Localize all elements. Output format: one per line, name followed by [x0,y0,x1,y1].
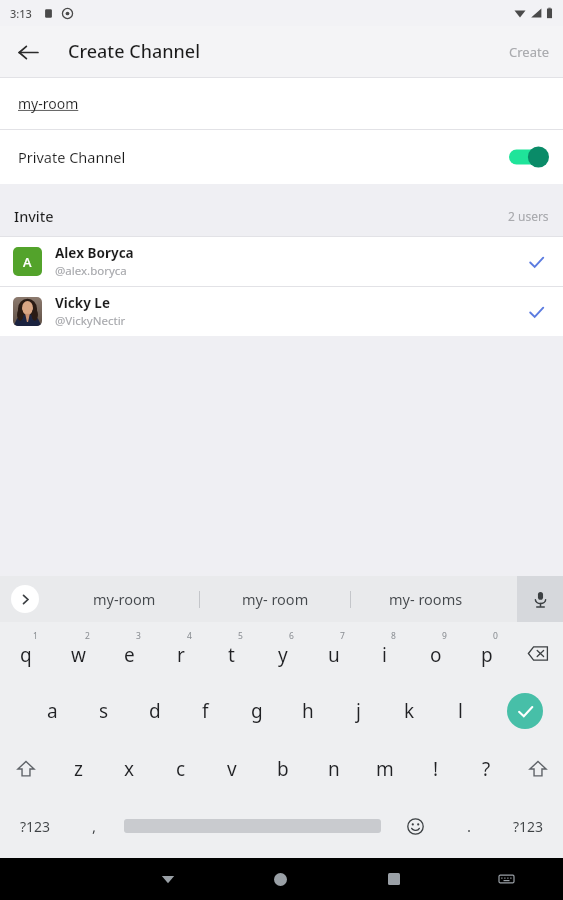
button[interactable]: ? [461,740,512,798]
button[interactable]: f [180,682,231,740]
button[interactable]: my-room [0,78,563,129]
staticText: l [458,698,463,724]
staticText: Private Channel [18,147,126,167]
button[interactable]: 6 [257,624,308,682]
staticText: g [251,698,263,724]
staticText: 5 [238,630,243,642]
staticText: 9 [442,630,447,642]
button[interactable]: c [155,740,206,798]
staticText: Create Channel [68,39,200,64]
staticText: ? [482,756,491,782]
button[interactable]: 9 [410,624,461,682]
staticText: ?123 [513,817,544,836]
button[interactable]: , [70,798,118,854]
button[interactable]: 1 [0,624,52,682]
button[interactable]: Private Channel [0,130,563,184]
button[interactable]: Voice input [517,576,563,622]
staticText: r [177,642,185,668]
button[interactable]: m [359,740,410,798]
button[interactable]: 0 [461,624,512,682]
button[interactable]: d [129,682,180,740]
staticText: a [47,698,58,724]
button[interactable]: my- room [200,576,350,622]
button[interactable]: Hide keyboard [112,858,224,900]
button[interactable]: Switch keyboard [450,858,563,900]
staticText: A [23,253,32,271]
button[interactable]: Vicky Le [0,287,563,336]
button[interactable]: my- rooms [351,576,501,622]
staticText: s [99,698,109,724]
staticText: @alex.boryca [55,263,127,279]
staticText: 3 [136,630,141,642]
button[interactable]: Space [118,798,386,854]
staticText: i [382,642,387,668]
staticText: 3:13 [10,6,32,21]
button[interactable]: Recents [337,858,450,900]
button[interactable]: Back [6,30,50,74]
button[interactable]: Create [495,31,563,73]
staticText: @VickyNectir [55,313,126,329]
button[interactable]: l [435,682,486,740]
button[interactable]: Selected [523,249,549,275]
staticText: o [430,642,442,668]
button[interactable]: j [333,682,384,740]
button[interactable]: 4 [155,624,206,682]
staticText: t [228,642,235,668]
button[interactable]: 2 [52,624,104,682]
button[interactable]: my-room [50,576,199,622]
button[interactable]: s [78,682,129,740]
button[interactable]: Emoji [386,798,445,854]
button[interactable]: b [257,740,308,798]
staticText: 2 [85,630,90,642]
button[interactable]: Shift [512,740,563,798]
staticText: x [124,756,135,782]
button[interactable]: ?123 [493,798,563,854]
button[interactable]: ?123 [0,798,70,854]
button[interactable]: k [384,682,435,740]
staticText: ! [433,756,439,782]
staticText: p [481,642,493,668]
button[interactable]: Backspace [512,624,563,682]
staticText: b [277,756,289,782]
button[interactable]: 5 [206,624,257,682]
staticText: d [149,698,161,724]
button[interactable]: g [231,682,282,740]
button[interactable]: 8 [359,624,410,682]
button[interactable]: Shift [0,740,52,798]
staticText: h [302,698,314,724]
staticText: y [278,642,288,668]
button[interactable]: Selected [523,299,549,325]
button[interactable]: z [52,740,104,798]
button[interactable]: Enter [486,682,563,740]
staticText: my-room [18,94,79,113]
button[interactable]: Home [224,858,337,900]
staticText: w [71,642,86,668]
button[interactable]: a [27,682,78,740]
button[interactable]: v [206,740,257,798]
button[interactable]: n [308,740,359,798]
staticText: . [467,816,472,836]
staticText: Alex Boryca [55,244,134,262]
staticText: 4 [187,630,192,642]
button[interactable]: More suggestions [11,585,39,613]
staticText: 7 [340,630,345,642]
staticText: q [20,642,32,668]
button[interactable]: 3 [104,624,155,682]
staticText: my-room [93,589,156,609]
staticText: 1 [33,630,38,642]
staticText: c [176,756,186,782]
button[interactable]: . [445,798,493,854]
button[interactable]: A [0,237,563,286]
button[interactable]: 7 [308,624,359,682]
staticText: 2 users [508,208,549,224]
staticText: z [74,756,83,782]
staticText: u [328,642,340,668]
staticText: Invite [14,206,54,226]
staticText: my- rooms [389,589,463,609]
button[interactable]: ! [410,740,461,798]
staticText: v [227,756,237,782]
button[interactable]: x [104,740,155,798]
staticText: , [92,816,97,836]
button[interactable]: h [282,682,333,740]
staticText: my- room [242,589,309,609]
